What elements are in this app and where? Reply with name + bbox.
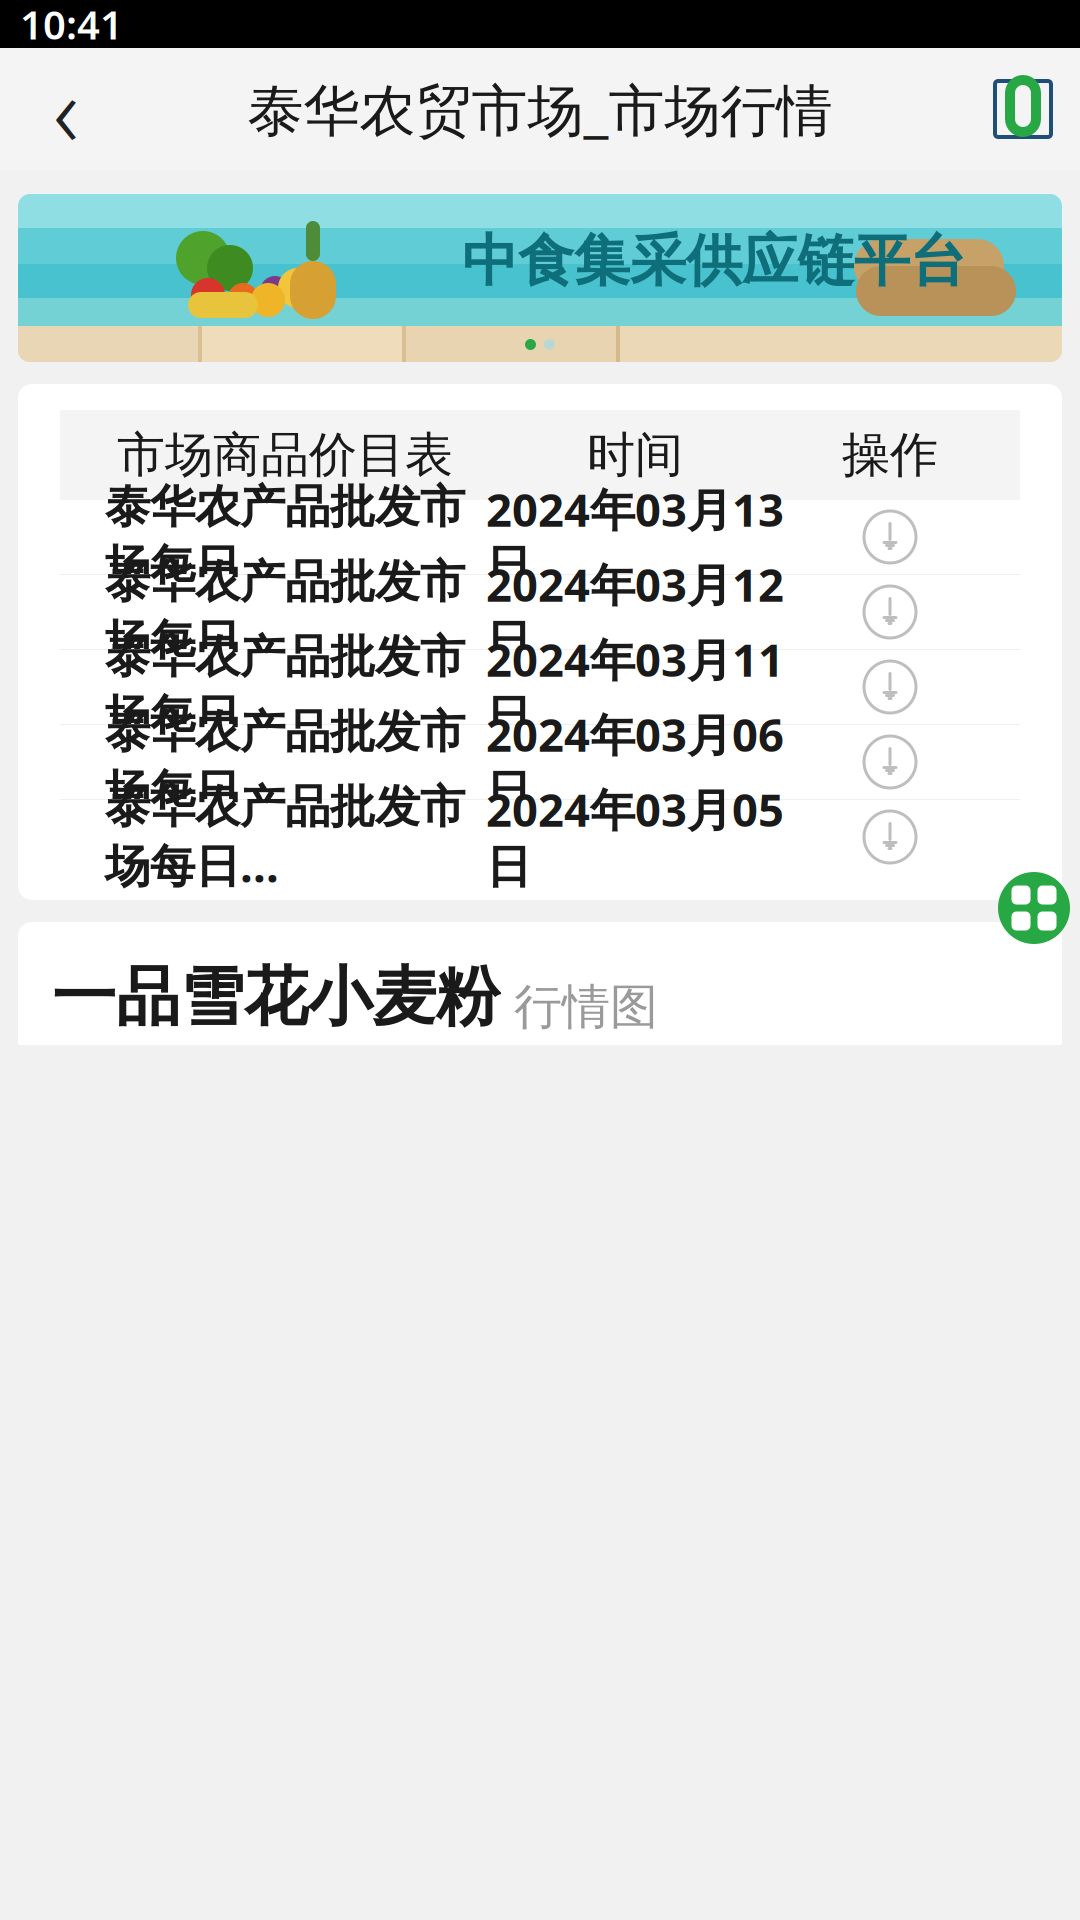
staticText: 10:41 — [20, 0, 123, 50]
staticText: 泰华农贸市场_市场行情 — [247, 72, 832, 146]
staticText: 2024年03月05日 — [486, 779, 784, 895]
staticText: 泰华农产品批发市场每日... — [105, 554, 465, 670]
staticText: 时间 — [587, 425, 683, 484]
button[interactable]: 泰华农产品批发市场每日... — [60, 650, 1020, 724]
staticText: 泰华农产品批发市场每日... — [105, 704, 465, 820]
staticText: 一品雪花小麦粉 — [52, 958, 500, 1037]
staticText: 2024年03月11日 — [486, 629, 784, 745]
staticText: 中食集采供应链平台 — [462, 227, 966, 295]
staticText: 2024年03月13日 — [486, 479, 784, 595]
staticText: 泰华农产品批发市场每日... — [105, 479, 465, 595]
button[interactable]: 泰华农产品批发市场每日... — [60, 800, 1020, 874]
button[interactable]: 泰华农产品批发市场每日... — [60, 500, 1020, 574]
staticText: 市场商品价目表 — [117, 425, 453, 484]
button[interactable]: 更多功能 — [998, 872, 1070, 944]
staticText: 泰华农产品批发市场每日... — [105, 629, 465, 745]
button[interactable]: 返回 — [20, 57, 112, 161]
staticText: 泰华农产品批发市场每日... — [105, 779, 465, 895]
staticText: ‹ — [53, 43, 79, 174]
staticText: 行情图 — [514, 978, 658, 1037]
staticText: 操作 — [842, 425, 938, 484]
button[interactable]: 附件 — [986, 72, 1060, 146]
button[interactable]: 中食集采供应链平台 — [18, 194, 1062, 362]
button[interactable]: 泰华农产品批发市场每日... — [60, 575, 1020, 649]
button[interactable]: 泰华农产品批发市场每日... — [60, 725, 1020, 799]
staticText: 2024年03月12日 — [486, 554, 784, 670]
staticText: 2024年03月06日 — [486, 704, 784, 820]
